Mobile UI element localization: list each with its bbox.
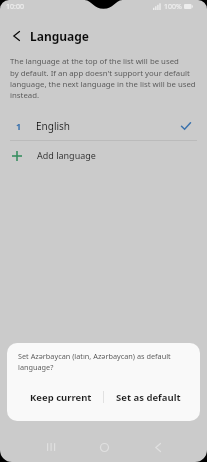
staticText: Add language [37, 149, 96, 161]
staticText: 10:00 [6, 2, 24, 12]
staticText: 1 [16, 120, 22, 132]
staticText: Set as default [116, 391, 181, 404]
staticText: Set Azərbaycan (latın, Azərbaycan) as de… [18, 351, 171, 372]
button[interactable]: Add language [0, 141, 207, 169]
staticText: Keep current [30, 391, 92, 404]
staticText: Language [30, 28, 90, 44]
staticText: The language at the top of the list will… [10, 56, 196, 100]
button[interactable]: 1 [0, 112, 207, 140]
staticText: English [36, 119, 71, 133]
staticText: 100% [164, 2, 182, 12]
button[interactable] [13, 31, 20, 41]
button[interactable]: Set as default [104, 387, 200, 407]
button[interactable]: Keep current [7, 387, 103, 407]
